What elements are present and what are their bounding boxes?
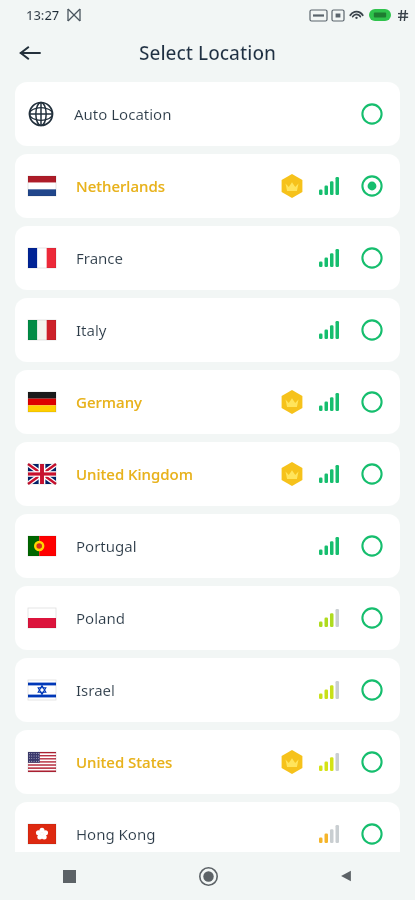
staticText: Portugal: [76, 536, 137, 556]
button[interactable]: Hong Kong: [15, 802, 400, 866]
button[interactable]: United States: [15, 730, 400, 794]
staticText: 13:27: [26, 6, 60, 24]
button[interactable]: France: [15, 226, 400, 290]
staticText: Auto Location: [74, 104, 172, 124]
button[interactable]: Back: [8, 31, 52, 75]
staticText: Italy: [76, 320, 107, 340]
staticText: Germany: [76, 392, 142, 412]
staticText: France: [76, 248, 124, 268]
staticText: Hong Kong: [76, 824, 156, 844]
button[interactable]: Home: [139, 852, 277, 900]
button[interactable]: Germany: [15, 370, 400, 434]
staticText: United Kingdom: [76, 464, 193, 484]
button[interactable]: Netherlands: [15, 154, 400, 218]
button[interactable]: United Kingdom: [15, 442, 400, 506]
button[interactable]: Back: [277, 852, 415, 900]
button[interactable]: Auto Location: [15, 82, 400, 146]
button[interactable]: Israel: [15, 658, 400, 722]
button[interactable]: Portugal: [15, 514, 400, 578]
staticText: Select Location: [139, 40, 276, 66]
staticText: Israel: [76, 680, 115, 700]
button[interactable]: Italy: [15, 298, 400, 362]
button[interactable]: Poland: [15, 586, 400, 650]
staticText: Poland: [76, 608, 125, 628]
staticText: United States: [76, 752, 173, 772]
button[interactable]: Recent apps: [0, 852, 139, 900]
staticText: Netherlands: [76, 176, 165, 196]
